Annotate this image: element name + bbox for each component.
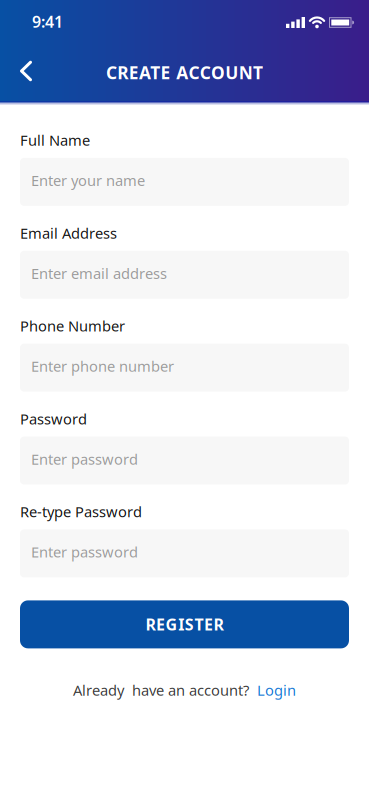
staticText: Already have an account?: [73, 680, 249, 700]
staticText: REGISTER: [145, 614, 224, 635]
staticText: CREATE ACCOUNT: [106, 61, 263, 84]
button[interactable]: Enter phone number: [20, 344, 349, 392]
button[interactable]: Back: [0, 50, 32, 92]
staticText: Enter email address: [31, 263, 167, 283]
staticText: 9:41: [32, 11, 63, 32]
staticText: Email Address: [20, 223, 117, 243]
button[interactable]: Login: [257, 680, 296, 700]
button[interactable]: Enter password: [20, 529, 349, 577]
staticText: Enter phone number: [31, 356, 174, 376]
staticText: Phone Number: [20, 316, 125, 336]
staticText: Full Name: [20, 130, 90, 150]
staticText: Enter password: [31, 542, 138, 562]
staticText: Enter your name: [31, 171, 145, 190]
staticText: Login: [257, 680, 296, 700]
staticText: Password: [20, 409, 87, 428]
button[interactable]: Enter email address: [20, 251, 349, 299]
button[interactable]: Enter password: [20, 436, 349, 484]
staticText: Enter password: [31, 449, 138, 469]
button[interactable]: Enter your name: [20, 158, 349, 206]
button[interactable]: REGISTER: [20, 600, 349, 648]
staticText: Re-type Password: [20, 502, 142, 521]
